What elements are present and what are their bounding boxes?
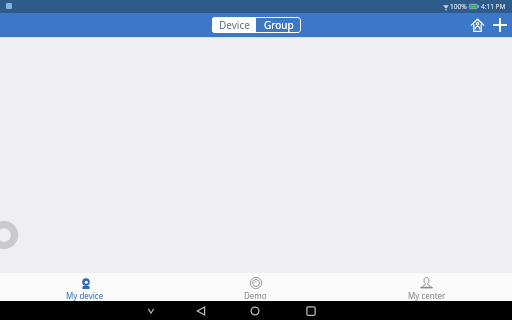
staticText: Group: [264, 18, 294, 32]
staticText: 100%: [450, 2, 467, 11]
button[interactable]: Group: [256, 17, 301, 33]
button[interactable]: Home: [239, 301, 271, 320]
staticText: Device: [219, 18, 250, 32]
button[interactable]: Add: [489, 13, 510, 37]
button[interactable]: Hide keyboard: [135, 301, 167, 320]
button[interactable]: My center: [341, 273, 512, 301]
button[interactable]: Device: [212, 17, 256, 33]
staticText: My center: [408, 290, 446, 301]
button[interactable]: Recent apps: [295, 301, 327, 320]
staticText: My device: [66, 290, 104, 301]
staticText: Demo: [244, 290, 267, 301]
button[interactable]: Home: [467, 13, 489, 37]
button[interactable]: Demo: [170, 273, 341, 301]
button[interactable]: My device: [0, 273, 170, 301]
button[interactable]: Back: [185, 301, 217, 320]
staticText: 4:11 PM: [481, 2, 506, 11]
